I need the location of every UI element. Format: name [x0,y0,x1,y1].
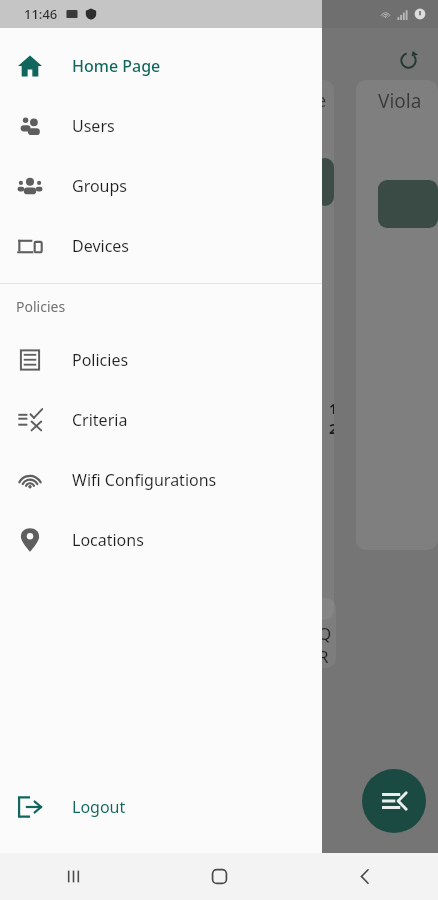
button[interactable]: Devices [0,216,322,276]
staticText: Wifi Configurations [72,469,217,491]
staticText: Policies [16,297,66,316]
staticText: Users [72,115,115,137]
button[interactable]: Policies [0,330,322,390]
button[interactable]: Locations [0,510,322,570]
staticText: Viola [378,88,422,114]
staticText: Groups [72,175,128,197]
button[interactable]: Open menu [362,769,426,833]
button[interactable]: Home [195,853,243,900]
staticText: 11:46 [24,5,58,23]
button[interactable]: Groups [0,156,322,216]
button[interactable]: Back [341,853,389,900]
staticText: Locations [72,529,144,551]
button[interactable]: Home Page [0,36,322,96]
button[interactable]: Criteria [0,390,322,450]
staticText: QR [318,622,336,668]
staticText: e [316,88,327,113]
staticText: Logout [72,796,126,818]
staticText: Criteria [72,409,128,431]
staticText: 12 [329,398,334,438]
staticText: Home Page [72,55,161,77]
button[interactable]: Logout [0,777,322,837]
staticText: Policies [72,349,129,371]
button[interactable]: Refresh [388,40,428,80]
button[interactable]: Users [0,96,322,156]
button[interactable]: Wifi Configurations [0,450,322,510]
button[interactable]: Recent apps [49,853,97,900]
staticText: Devices [72,235,130,257]
